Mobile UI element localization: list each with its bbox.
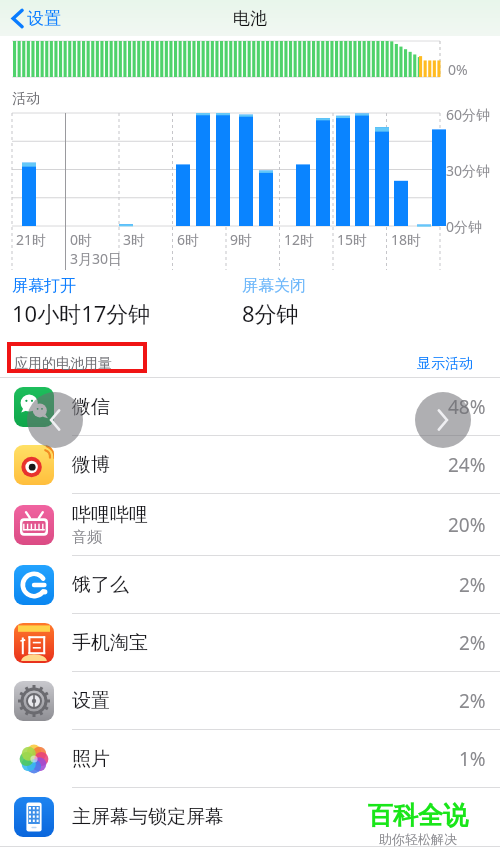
staticText: 微博 — [72, 453, 110, 477]
staticText: 微信 — [72, 395, 110, 419]
staticText: 哔哩哔哩 — [72, 503, 148, 527]
staticText: 18时 — [391, 230, 422, 249]
staticText: 3月30日 — [70, 249, 123, 268]
button[interactable]: 手机淘宝 — [0, 614, 500, 672]
button[interactable]: 哔哩哔哩 — [0, 494, 500, 556]
staticText: 手机淘宝 — [72, 631, 148, 655]
staticText: 10小时17分钟 — [12, 298, 151, 328]
button[interactable]: 应用的电池用量 — [14, 355, 112, 373]
staticText: 15时 — [337, 230, 368, 249]
staticText: 24% — [448, 452, 486, 478]
button[interactable]: 设置 — [0, 4, 73, 33]
staticText: 48% — [448, 394, 486, 420]
staticText: 2% — [459, 572, 486, 598]
staticText: 2% — [459, 630, 486, 656]
staticText: 0时 — [70, 230, 93, 249]
staticText: 20% — [448, 512, 486, 538]
staticText: 照片 — [72, 747, 110, 771]
staticText: 2% — [459, 688, 486, 714]
staticText: 活动 — [12, 90, 40, 108]
staticText: 21时 — [16, 230, 47, 249]
button[interactable]: 显示活动 — [417, 355, 473, 373]
staticText: 8分钟 — [242, 298, 299, 328]
staticText: 1% — [459, 746, 486, 772]
staticText: 助你轻松解决 — [379, 831, 457, 847]
staticText: 6时 — [177, 230, 200, 249]
staticText: 0% — [448, 60, 468, 79]
staticText: 饿了么 — [72, 573, 129, 597]
staticText: 60分钟 — [446, 105, 491, 124]
staticText: 屏幕打开 — [12, 276, 76, 296]
staticText: 音频 — [72, 528, 102, 547]
button[interactable]: 主屏幕与锁定屏幕 — [0, 788, 500, 846]
staticText: 30分钟 — [446, 161, 491, 180]
button[interactable]: Next — [415, 392, 471, 448]
staticText: 12时 — [284, 230, 315, 249]
staticText: 主屏幕与锁定屏幕 — [72, 805, 224, 829]
button[interactable]: 设置 — [0, 672, 500, 730]
staticText: 设置 — [72, 689, 110, 713]
button[interactable]: 饿了么 — [0, 556, 500, 614]
staticText: 百科全说 — [368, 800, 468, 831]
staticText: 0分钟 — [446, 217, 483, 236]
staticText: 屏幕关闭 — [242, 276, 306, 296]
button[interactable]: 微博 — [0, 436, 500, 494]
staticText: 设置 — [27, 8, 61, 29]
staticText: 9时 — [230, 230, 253, 249]
button[interactable]: 照片 — [0, 730, 500, 788]
button[interactable]: Previous — [27, 392, 83, 448]
staticText: 电池 — [233, 8, 267, 29]
button[interactable]: 微信 — [0, 378, 500, 436]
staticText: 3时 — [123, 230, 146, 249]
